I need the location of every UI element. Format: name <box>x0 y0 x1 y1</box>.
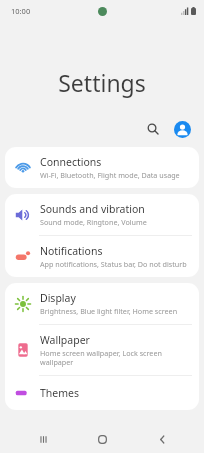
staticText: App notifications, Status bar, Do not di… <box>40 259 187 269</box>
staticText: Sound mode, Ringtone, Volume <box>40 217 147 227</box>
staticText: Wallpaper <box>40 333 90 347</box>
button[interactable]: Home <box>85 425 119 453</box>
button[interactable]: Wallpaper <box>5 325 199 375</box>
staticText: Home screen wallpaper, Lock screen wallp… <box>40 348 189 367</box>
staticText: Themes <box>40 386 80 400</box>
staticText: Display <box>40 291 76 305</box>
button[interactable]: Recents <box>26 425 60 453</box>
button[interactable]: Back <box>145 425 179 453</box>
button[interactable]: Connections <box>5 147 199 188</box>
button[interactable]: Display <box>5 283 199 324</box>
staticText: Notifications <box>40 244 103 258</box>
staticText: Sounds and vibration <box>40 202 145 216</box>
button[interactable]: Account <box>171 118 193 140</box>
staticText: Brightness, Blue light filter, Home scre… <box>40 306 178 316</box>
staticText: 10:00 <box>11 6 31 16</box>
button[interactable]: Sounds and vibration <box>5 194 199 235</box>
staticText: Connections <box>40 155 102 169</box>
staticText: Wi-Fi, Bluetooth, Flight mode, Data usag… <box>40 170 180 180</box>
button[interactable]: Notifications <box>5 236 199 277</box>
button[interactable]: Search <box>142 118 164 140</box>
staticText: Settings <box>0 67 204 98</box>
button[interactable]: Themes <box>5 376 199 410</box>
